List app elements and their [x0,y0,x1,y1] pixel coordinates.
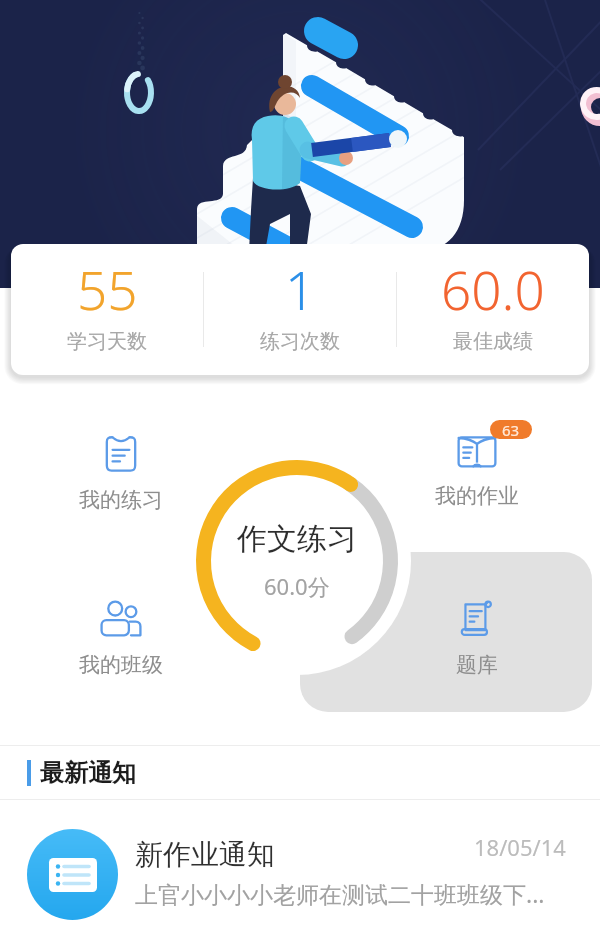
staticText: 上官小小小小老师在测试二十班班级下... [135,878,545,909]
staticText: 新作业通知 [135,837,275,872]
staticText: 1 [285,253,316,325]
staticText: 学习天数 [67,329,147,354]
staticText: 18/05/14 [474,832,566,862]
staticText: 60.0 [441,253,545,325]
button[interactable]: 55 [11,259,203,360]
staticText: 我的练习 [79,487,163,513]
staticText: 63 [502,420,520,439]
staticText: 最新通知 [40,758,136,788]
button[interactable]: 1 [204,259,396,360]
button[interactable]: 我的练习 [51,426,191,519]
staticText: 最佳成绩 [453,329,533,354]
staticText: 我的班级 [79,652,163,678]
button[interactable]: 60.0 [397,259,589,360]
button[interactable]: 我的班级 [51,591,191,684]
staticText: 60.0分 [264,571,330,601]
button[interactable]: 题库 [407,591,547,684]
button[interactable]: 63 [407,422,547,515]
staticText: 我的作业 [435,483,519,509]
staticText: 55 [77,253,138,325]
staticText: 作文练习 [237,520,357,558]
staticText: 题库 [456,652,498,678]
button[interactable]: 新作业通知 [0,800,600,937]
staticText: 练习次数 [260,329,340,354]
